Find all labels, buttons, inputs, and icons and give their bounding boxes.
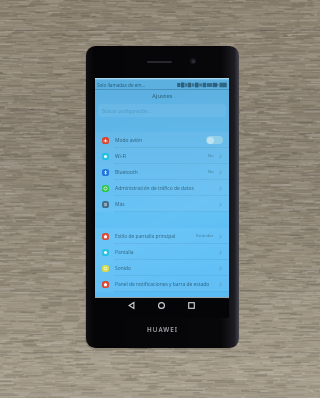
button[interactable]: Back <box>116 299 146 318</box>
button[interactable]: Más <box>95 196 229 212</box>
staticText: Modo avión <box>115 137 143 144</box>
staticText: No <box>208 153 214 159</box>
staticText: Ajustes <box>152 92 173 100</box>
staticText: Pantalla <box>115 249 134 256</box>
button[interactable]: Panel de notificaciones y barra de estad… <box>95 276 229 292</box>
staticText: HUAWEI <box>86 325 239 334</box>
button[interactable]: Pantalla <box>95 244 229 260</box>
button[interactable]: Buscar configuración... <box>98 104 226 117</box>
button[interactable]: Wi-Fi <box>95 148 229 164</box>
staticText: Buscar configuración... <box>102 108 152 114</box>
staticText: Solo llamadas de em... <box>97 82 146 88</box>
staticText: Estilo de pantalla principal <box>115 233 176 240</box>
button[interactable]: Administración de tráfico de datos <box>95 180 229 196</box>
staticText: Wi-Fi <box>115 153 127 160</box>
button[interactable]: Estilo de pantalla principal <box>95 228 229 244</box>
button[interactable]: Home <box>146 299 176 318</box>
staticText: Bluetooth <box>115 169 138 176</box>
staticText: Administración de tráfico de datos <box>115 185 194 192</box>
button[interactable]: Recents <box>176 299 206 318</box>
button[interactable]: Bluetooth <box>95 164 229 180</box>
button[interactable]: Modo avión <box>95 132 229 148</box>
staticText: No <box>208 169 214 175</box>
button[interactable]: Sonido <box>95 260 229 276</box>
staticText: Panel de notificaciones y barra de estad… <box>115 281 210 288</box>
staticText: Sonido <box>115 265 131 272</box>
staticText: Más <box>115 201 125 208</box>
staticText: Estándar <box>196 233 214 239</box>
